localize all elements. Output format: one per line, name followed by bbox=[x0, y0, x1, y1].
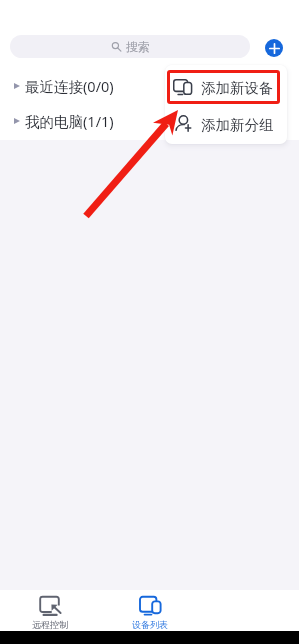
button[interactable]: 最近连接(0/0) bbox=[0, 69, 299, 103]
staticText: 搜索 bbox=[126, 39, 150, 54]
staticText: 远程控制 bbox=[32, 619, 68, 630]
button[interactable]: 添加新设备 bbox=[165, 69, 287, 106]
staticText: 最近连接(0/0) bbox=[25, 76, 114, 96]
button[interactable]: 设备列表 bbox=[100, 590, 200, 631]
button[interactable]: 我的电脑(1/1) bbox=[0, 104, 299, 138]
button[interactable]: 远程控制 bbox=[0, 590, 100, 631]
button[interactable]: 添加 bbox=[265, 39, 283, 57]
staticText: 添加新设备 bbox=[201, 79, 274, 97]
staticText: 我的电脑(1/1) bbox=[25, 111, 114, 131]
staticText: 添加新分组 bbox=[201, 116, 274, 134]
staticText: 设备列表 bbox=[132, 619, 168, 630]
button[interactable]: 搜索 bbox=[10, 35, 250, 58]
button[interactable]: 添加新分组 bbox=[165, 106, 287, 143]
